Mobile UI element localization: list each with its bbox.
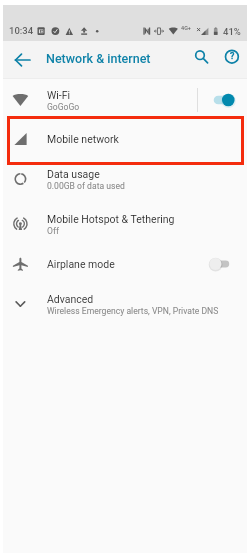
button[interactable]: Data usage [3, 159, 247, 199]
button[interactable]: Search [189, 46, 216, 73]
button[interactable]: Airplane mode [3, 244, 247, 284]
staticText: Mobile network [47, 133, 119, 145]
button[interactable]: Toggle Airplane mode [206, 254, 242, 274]
staticText: Wi-Fi [47, 89, 71, 101]
staticText: Advanced [47, 293, 94, 305]
staticText: Data usage [47, 168, 100, 180]
staticText: Network & internet [46, 51, 151, 66]
button[interactable]: Advanced [3, 284, 247, 324]
button[interactable]: Wi-Fi [3, 80, 247, 120]
button[interactable]: Mobile Hotspot & Tethering [3, 204, 247, 244]
staticText: Off [47, 226, 59, 236]
staticText: Mobile Hotspot & Tethering [47, 213, 175, 225]
button[interactable]: Help [221, 46, 248, 73]
staticText: 41% [223, 26, 241, 37]
button[interactable]: Toggle Wi-Fi [206, 90, 242, 110]
staticText: Airplane mode [47, 258, 115, 270]
staticText: Wireless Emergency alerts, VPN, Private … [47, 306, 219, 316]
staticText: GoGoGo [47, 102, 80, 112]
button[interactable]: Back [9, 46, 37, 74]
button[interactable]: Mobile network [3, 119, 247, 159]
staticText: ? [230, 51, 235, 62]
staticText: 0.00GB of data used [47, 181, 125, 191]
staticText: 10:34 [9, 25, 34, 36]
staticText: 4G+ [181, 25, 191, 31]
